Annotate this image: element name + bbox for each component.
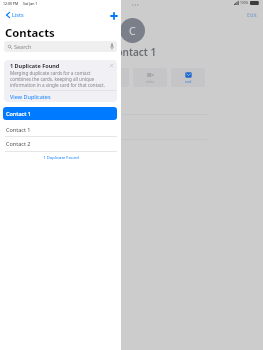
button[interactable]: video bbox=[133, 68, 167, 87]
staticText: message bbox=[105, 80, 119, 84]
staticText: Edit bbox=[247, 11, 257, 18]
button[interactable]: View Duplicates bbox=[10, 93, 51, 100]
button[interactable]: Dismiss bbox=[107, 61, 115, 69]
button[interactable]: Edit bbox=[247, 11, 257, 18]
button[interactable]: Lists bbox=[6, 11, 24, 18]
button[interactable]: Add contact bbox=[108, 10, 119, 21]
staticText: 100% bbox=[240, 1, 249, 5]
staticText: Contacts bbox=[5, 25, 55, 40]
staticText: Contact 1 bbox=[110, 45, 157, 59]
staticText: Search bbox=[14, 43, 32, 50]
staticText: View Duplicates bbox=[10, 93, 51, 100]
staticText: 1 Duplicate Found bbox=[43, 155, 79, 161]
button[interactable]: Contact 2 bbox=[0, 136, 121, 150]
staticText: Sat Jan 1 bbox=[23, 1, 38, 6]
button[interactable]: message bbox=[95, 68, 129, 87]
staticText: Contact 1 bbox=[6, 126, 31, 133]
staticText: Contact 1 bbox=[6, 110, 31, 117]
staticText: mail bbox=[185, 80, 192, 84]
staticText: 12:00 PM bbox=[3, 1, 19, 6]
staticText: Merging duplicate cards for a contact co… bbox=[10, 70, 109, 88]
staticText: Lists bbox=[12, 11, 24, 18]
staticText: 1 Duplicate Found bbox=[10, 62, 60, 69]
button[interactable]: Contact 1 bbox=[0, 122, 121, 136]
button[interactable]: Contact 1 bbox=[3, 107, 117, 120]
button[interactable]: mail bbox=[171, 68, 205, 87]
staticText: C bbox=[129, 24, 136, 38]
staticText: Contact 2 bbox=[6, 140, 31, 147]
staticText: video bbox=[146, 80, 155, 84]
button[interactable]: Search bbox=[4, 41, 117, 52]
button[interactable]: More options bbox=[132, 1, 146, 9]
